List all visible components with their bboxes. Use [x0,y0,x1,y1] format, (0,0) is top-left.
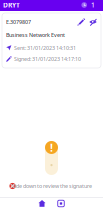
button[interactable]: Documents [53,197,68,210]
staticText: Business Network Event [6,31,65,39]
button[interactable]: Reject [6,179,19,192]
staticText: DRYT [3,1,20,9]
button[interactable]: Edit [77,18,85,26]
staticText: Signed: 31/01/2023 14:17:10 [14,55,81,63]
staticText: E.3079807 [6,18,31,26]
button[interactable]: Home [34,197,49,210]
staticText: 1 [91,1,95,9]
button[interactable]: Slide down to sign [45,141,58,175]
button[interactable]: Hide [89,18,97,26]
staticText: ! [50,140,53,155]
staticText: Slide down to review the signature [11,182,92,190]
staticText: Sent: 31/01/2023 14:10:31 [14,44,76,52]
